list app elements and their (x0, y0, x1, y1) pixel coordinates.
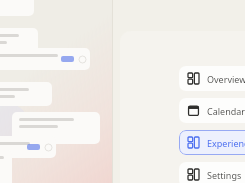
staticText: Overview (207, 73, 245, 85)
button[interactable]: Settings (179, 162, 245, 183)
button[interactable]: Calendar (179, 98, 245, 123)
button[interactable]: Experience (179, 130, 245, 155)
button[interactable]: Overview (179, 66, 245, 91)
staticText: Calendar (207, 105, 245, 117)
staticText: Settings (207, 169, 242, 181)
staticText: Experience (207, 137, 245, 149)
